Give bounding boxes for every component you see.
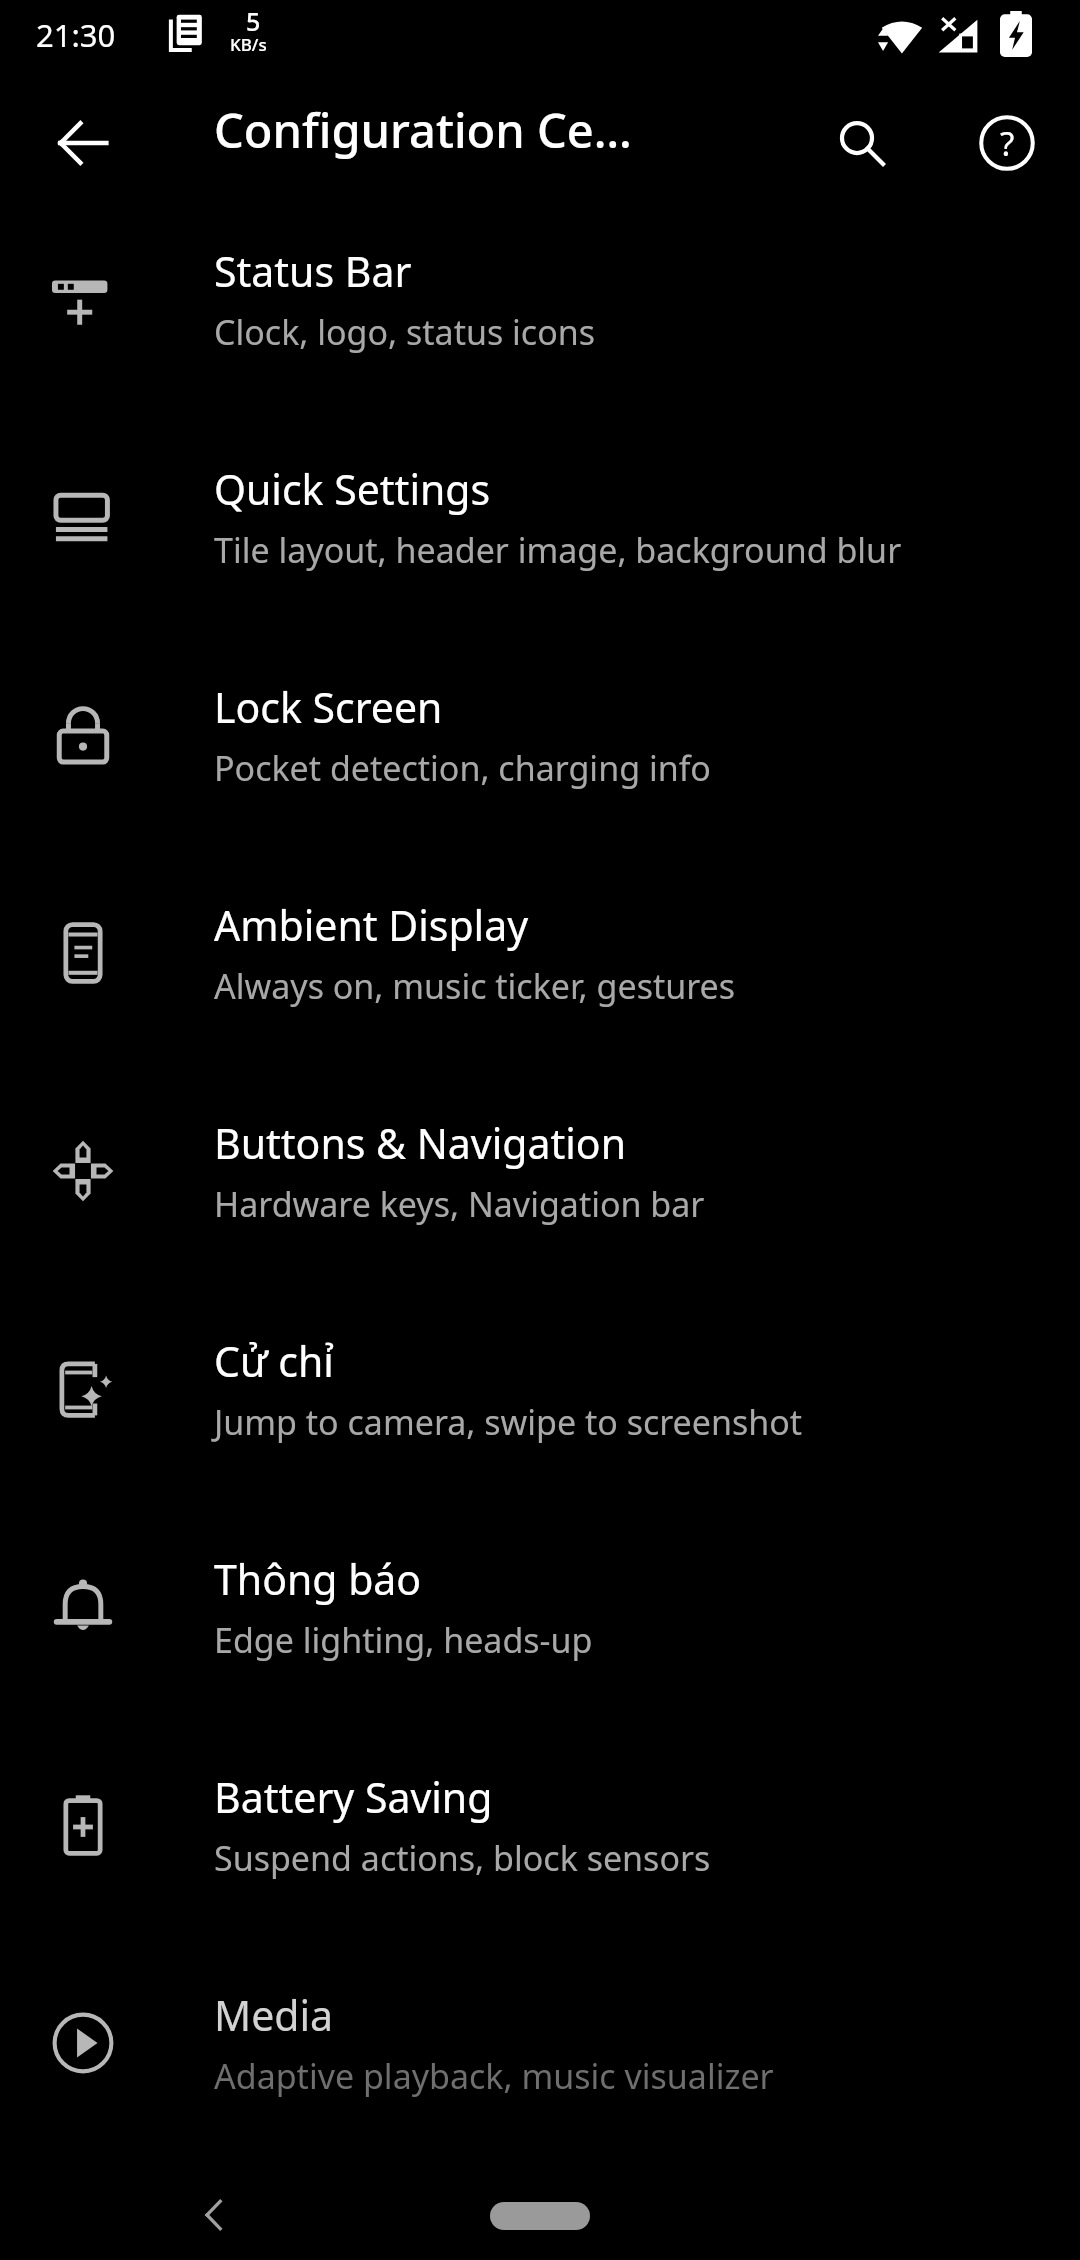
staticText: Status Bar [214, 243, 412, 299]
staticText: Always on, music ticker, gestures [214, 963, 736, 1009]
staticText: Thông báo [214, 1551, 422, 1607]
staticText: Suspend actions, block sensors [214, 1835, 711, 1881]
staticText: ? [1000, 121, 1015, 166]
button[interactable]: Help [959, 95, 1055, 191]
button[interactable]: Search [814, 95, 910, 191]
staticText: Edge lighting, heads-up [214, 1617, 593, 1663]
staticText: Quick Settings [214, 461, 491, 517]
staticText: Jump to camera, swipe to screenshot [214, 1399, 803, 1445]
staticText: Pocket detection, charging info [214, 745, 711, 791]
staticText: Battery Saving [214, 1769, 493, 1825]
staticText: Configuration Ce… [214, 98, 784, 162]
button[interactable]: Buttons & Navigation [0, 1062, 1080, 1280]
button[interactable]: Home [490, 2202, 590, 2230]
button[interactable]: Status Bar [0, 190, 1080, 408]
button[interactable]: Thông báo [0, 1498, 1080, 1716]
button[interactable]: Quick Settings [0, 408, 1080, 626]
button[interactable]: Media [0, 1934, 1080, 2152]
staticText: KB/s [230, 33, 267, 56]
staticText: Buttons & Navigation [214, 1115, 627, 1171]
staticText: Media [214, 1987, 334, 2043]
button[interactable]: Lock Screen [0, 626, 1080, 844]
staticText: Clock, logo, status icons [214, 309, 596, 355]
button[interactable]: Battery Saving [0, 1716, 1080, 1934]
staticText: Tile layout, header image, background bl… [214, 527, 902, 573]
button[interactable]: Back [35, 95, 131, 191]
staticText: Hardware keys, Navigation bar [214, 1181, 705, 1227]
button[interactable]: Ambient Display [0, 844, 1080, 1062]
staticText: Adaptive playback, music visualizer [214, 2053, 774, 2099]
staticText: 5 [246, 4, 261, 38]
staticText: Ambient Display [214, 897, 529, 953]
staticText: 21:30 [36, 14, 116, 56]
staticText: Lock Screen [214, 679, 443, 735]
staticText: Cử chỉ [214, 1333, 334, 1389]
button[interactable]: Cử chỉ [0, 1280, 1080, 1498]
button[interactable]: Back [176, 2176, 254, 2254]
